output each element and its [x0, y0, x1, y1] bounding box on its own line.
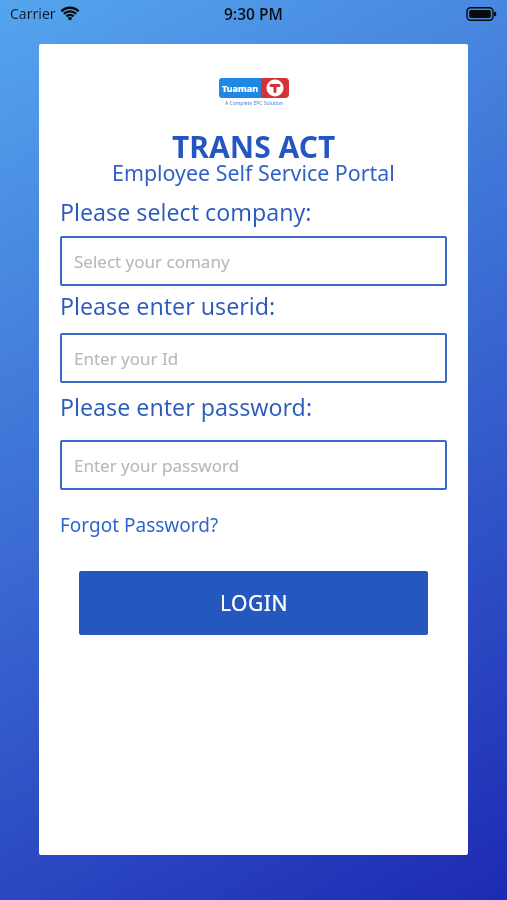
staticText: Carrier	[10, 4, 56, 23]
staticText: Tuaman	[222, 82, 259, 94]
button[interactable]: Select your comany	[60, 236, 447, 286]
staticText: LOGIN	[220, 589, 288, 618]
button[interactable]: Enter your Id	[60, 333, 447, 383]
staticText: TRANS ACT	[172, 126, 336, 167]
button[interactable]: LOGIN	[79, 571, 428, 635]
staticText: Enter your password	[74, 454, 240, 477]
staticText: A Complete EPC Solution	[225, 100, 284, 107]
staticText: Enter your Id	[74, 347, 179, 370]
staticText: Please enter userid:	[60, 290, 276, 322]
button[interactable]: Forgot Password?	[60, 512, 219, 538]
staticText: Please select company:	[60, 196, 312, 228]
button[interactable]: Enter your password	[60, 440, 447, 490]
staticText: Employee Self Service Portal	[112, 158, 395, 187]
staticText: Please enter password:	[60, 391, 313, 423]
staticText: Select your comany	[74, 250, 230, 273]
staticText: 9:30 PM	[224, 3, 283, 24]
